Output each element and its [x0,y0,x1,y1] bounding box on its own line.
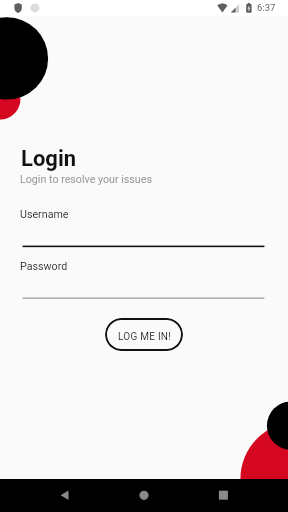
button[interactable]: Home [129,479,159,512]
staticText: Login to resolve your issues [20,173,152,186]
button[interactable]: Recent apps [209,479,239,512]
staticText: 6:37 [257,2,276,13]
button[interactable]: Back [50,479,79,512]
staticText: Password [20,260,68,273]
staticText: Login [21,146,77,172]
button[interactable]: LOG ME IN! [105,318,183,351]
staticText: LOG ME IN! [118,331,172,343]
staticText: Username [20,208,69,221]
